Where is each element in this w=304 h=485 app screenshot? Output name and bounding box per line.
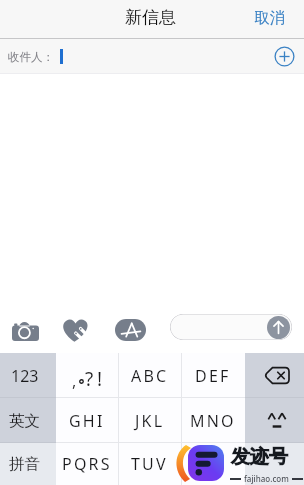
button[interactable]: 取消 xyxy=(240,1,304,39)
staticText: 新信息 xyxy=(125,7,176,28)
button[interactable]: GHI xyxy=(56,398,119,443)
staticText: 取消 xyxy=(254,8,285,28)
staticText: ABC xyxy=(131,365,169,387)
staticText: PQRS xyxy=(62,453,112,475)
staticText: 发迹号 xyxy=(231,445,288,469)
button[interactable]: PQRS xyxy=(56,443,119,485)
button[interactable]: TUV xyxy=(119,443,182,485)
staticText: 英文 xyxy=(9,411,40,431)
staticText: TUV xyxy=(131,453,168,475)
button[interactable]: MNO xyxy=(182,398,245,443)
staticText: fajihao.com xyxy=(244,473,289,484)
staticText: MNO xyxy=(190,410,236,432)
staticText: , xyxy=(72,370,77,390)
staticText: 123 xyxy=(11,365,39,387)
button[interactable]: DEF xyxy=(182,353,245,398)
button[interactable]: App Store xyxy=(115,318,146,341)
staticText: ? xyxy=(85,366,94,386)
staticText: 拼音 xyxy=(9,454,40,474)
button[interactable]: Message input xyxy=(170,314,292,340)
button[interactable]: 拼音 xyxy=(0,443,56,485)
button[interactable] xyxy=(245,398,304,443)
staticText: GHI xyxy=(69,410,105,432)
button[interactable]: 英文 xyxy=(0,398,56,443)
button[interactable]: Camera xyxy=(12,319,39,341)
button[interactable] xyxy=(245,353,304,398)
button[interactable]: Add contact xyxy=(274,46,295,67)
staticText: 收件人： xyxy=(8,50,54,64)
button[interactable]: JKL xyxy=(119,398,182,443)
staticText: ! xyxy=(97,366,103,386)
button[interactable] xyxy=(182,443,245,485)
button[interactable]: ABC xyxy=(119,353,182,398)
button[interactable]: , xyxy=(56,353,119,398)
staticText: DEF xyxy=(195,365,231,387)
button[interactable]: Send xyxy=(267,316,290,339)
staticText: JKL xyxy=(135,410,165,432)
button[interactable] xyxy=(245,443,304,485)
button[interactable]: 123 xyxy=(0,353,56,398)
button[interactable]: Digital Touch xyxy=(62,318,89,342)
